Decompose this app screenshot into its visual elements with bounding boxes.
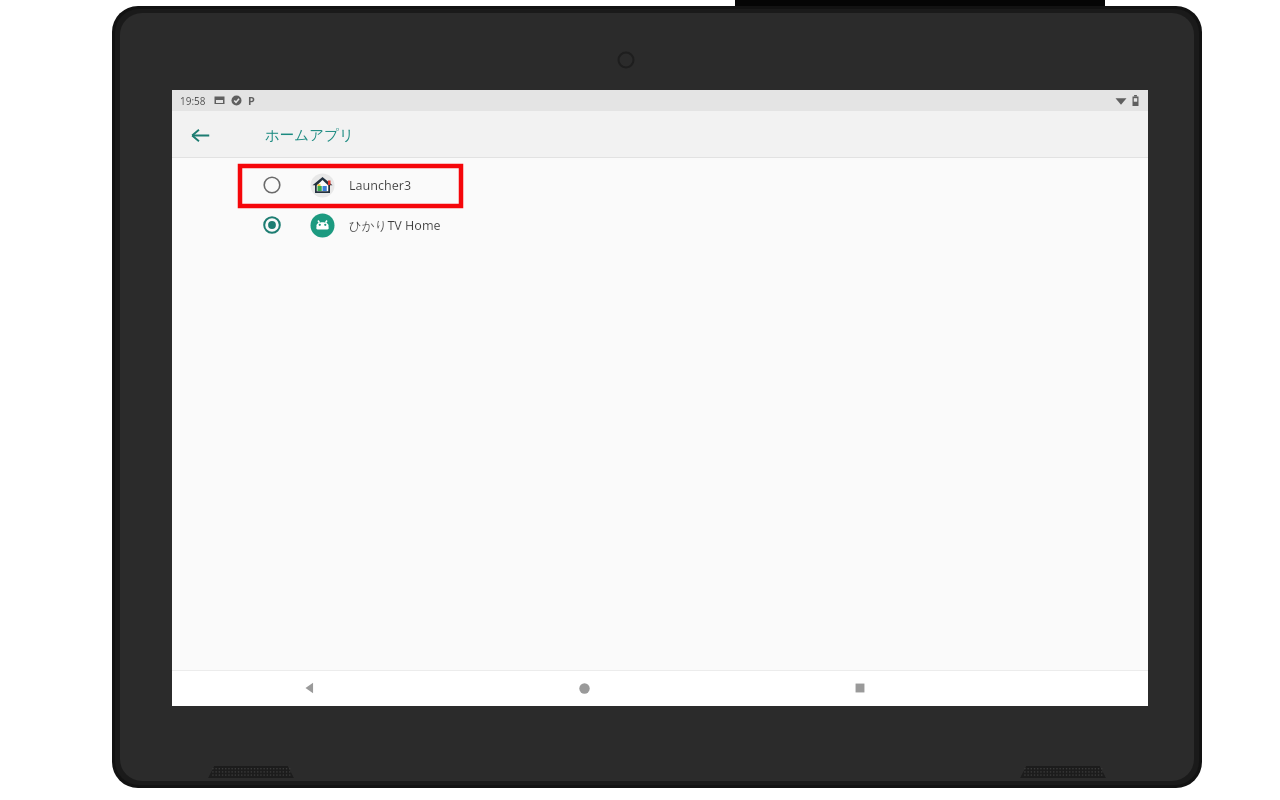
button[interactable]: Recent apps (722, 670, 997, 706)
button[interactable]: Back (178, 113, 222, 157)
button[interactable]: Home (447, 670, 722, 706)
staticText: ホームアプリ (265, 126, 354, 144)
staticText: 19:58 (180, 94, 206, 108)
staticText: Launcher3 (349, 177, 412, 194)
button[interactable]: Back (172, 670, 447, 706)
staticText: ひかりTV Home (349, 217, 441, 234)
button[interactable]: ひかりTV Home (172, 205, 1148, 245)
button[interactable]: Launcher3 (172, 165, 1148, 205)
staticText: P (248, 93, 255, 108)
